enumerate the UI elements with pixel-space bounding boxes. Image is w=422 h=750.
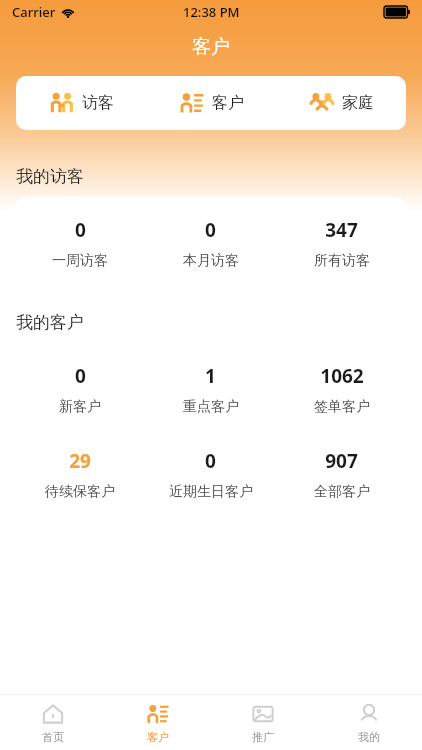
button[interactable]: 0 bbox=[145, 201, 276, 286]
staticText: 新客户 bbox=[59, 398, 101, 416]
button[interactable]: 1062 bbox=[276, 347, 407, 432]
staticText: 推广 bbox=[252, 730, 274, 744]
staticText: 347 bbox=[325, 217, 358, 243]
staticText: 一周访客 bbox=[52, 252, 108, 270]
staticText: 我的访客 bbox=[16, 166, 84, 187]
button[interactable]: 0 bbox=[145, 432, 276, 517]
staticText: 客户 bbox=[147, 730, 169, 744]
button[interactable]: 29 bbox=[15, 432, 145, 517]
button[interactable]: 0 bbox=[15, 347, 145, 432]
staticText: 访客 bbox=[82, 93, 114, 113]
staticText: 1062 bbox=[320, 363, 364, 389]
staticText: 家庭 bbox=[342, 93, 374, 113]
button[interactable]: 0 bbox=[15, 201, 145, 286]
staticText: 所有访客 bbox=[314, 252, 370, 270]
staticText: 0 bbox=[205, 217, 216, 243]
staticText: 我的 bbox=[358, 730, 380, 744]
button[interactable]: 首页 bbox=[0, 695, 105, 750]
button[interactable]: 客户 bbox=[105, 695, 210, 750]
staticText: 0 bbox=[75, 363, 86, 389]
button[interactable]: 家庭 bbox=[276, 76, 406, 130]
button[interactable]: 推广 bbox=[210, 695, 316, 750]
staticText: 0 bbox=[205, 448, 216, 474]
staticText: 0 bbox=[75, 217, 86, 243]
staticText: 待续保客户 bbox=[45, 483, 115, 501]
button[interactable]: 我的 bbox=[316, 695, 422, 750]
staticText: Carrier bbox=[12, 3, 56, 21]
staticText: 首页 bbox=[42, 730, 64, 744]
staticText: 29 bbox=[69, 448, 91, 474]
staticText: 本月访客 bbox=[183, 252, 239, 270]
staticText: 签单客户 bbox=[314, 398, 370, 416]
staticText: 客户 bbox=[192, 35, 230, 59]
button[interactable]: 客户 bbox=[146, 76, 276, 130]
button[interactable]: 访客 bbox=[16, 76, 146, 130]
staticText: 1 bbox=[205, 363, 216, 389]
staticText: 重点客户 bbox=[183, 398, 239, 416]
button[interactable]: 1 bbox=[145, 347, 276, 432]
staticText: 907 bbox=[325, 448, 358, 474]
staticText: 客户 bbox=[212, 93, 244, 113]
button[interactable]: 347 bbox=[276, 201, 407, 286]
staticText: 我的客户 bbox=[16, 312, 84, 333]
staticText: 全部客户 bbox=[314, 483, 370, 501]
staticText: 12:38 PM bbox=[183, 3, 240, 21]
staticText: 近期生日客户 bbox=[169, 483, 253, 501]
button[interactable]: 907 bbox=[276, 432, 407, 517]
